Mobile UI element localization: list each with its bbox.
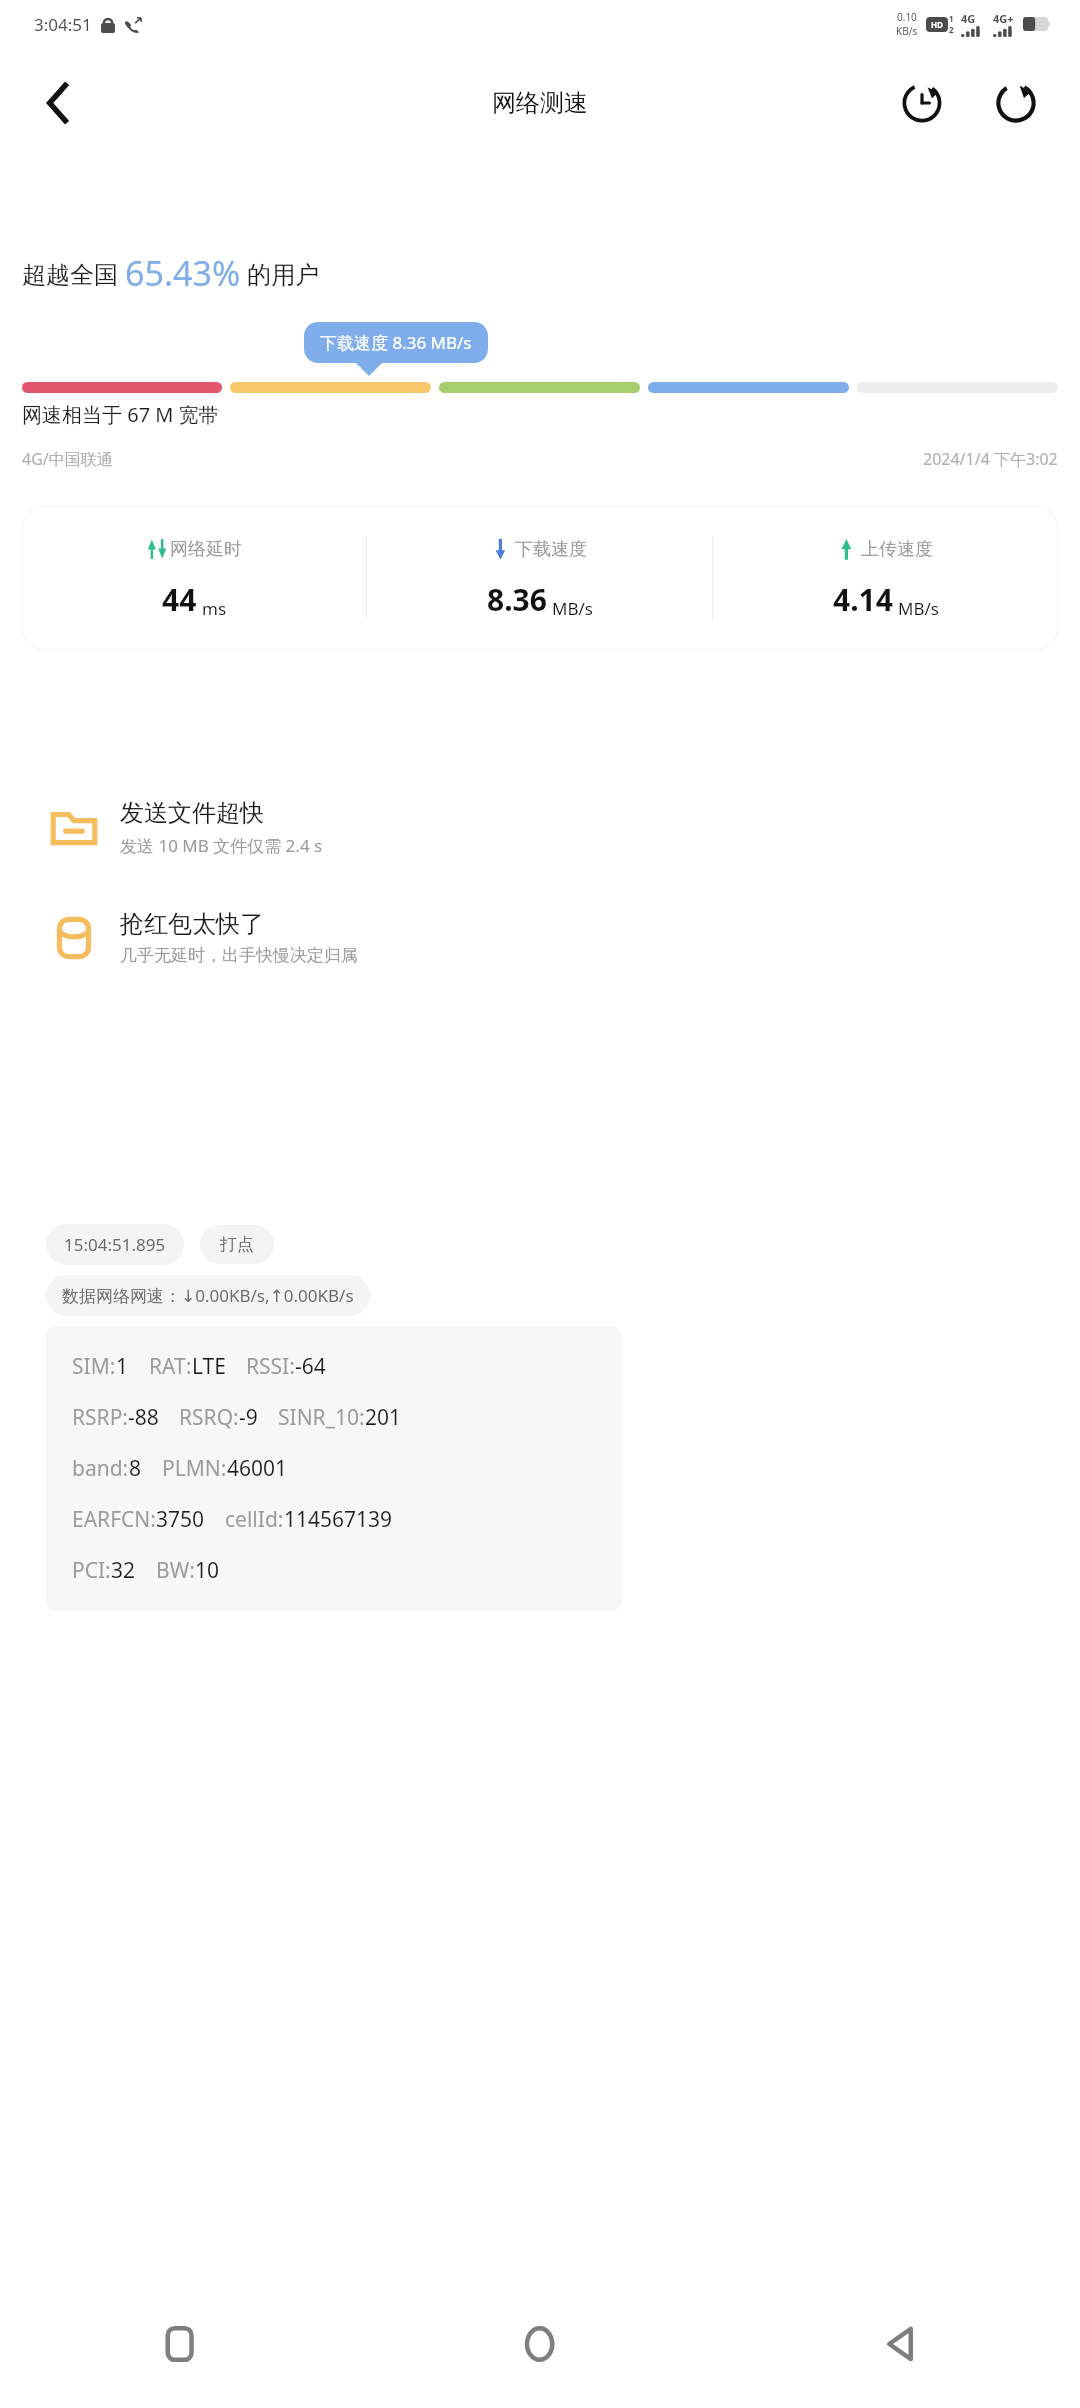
staticText: 抢红包太快了 (120, 909, 264, 939)
staticText: 几乎无延时，出手快慢决定归属 (120, 945, 358, 966)
staticText: 网络测速 (492, 88, 588, 118)
staticText: 下载速度 8.36 MB/s (320, 331, 472, 354)
staticText: 网络延时 (170, 538, 242, 561)
button[interactable]: History (886, 67, 958, 139)
staticText: 发送 10 MB 文件仅需 2.4 s (120, 834, 323, 857)
staticText: 3750 (156, 1505, 205, 1534)
button[interactable]: Home (360, 2280, 720, 2408)
staticText: -9 (239, 1403, 258, 1432)
staticText: band: (72, 1454, 129, 1483)
staticText: 下载速度 (515, 538, 587, 561)
staticText: 4G/中国联通 (22, 448, 113, 470)
staticText: 1 (116, 1352, 129, 1381)
staticText: SINR_10: (278, 1403, 365, 1432)
button[interactable]: Back (30, 75, 86, 131)
staticText: MB/s (552, 597, 593, 620)
staticText: 4G+ (993, 11, 1014, 26)
staticText: KB/s (896, 24, 918, 38)
button[interactable]: 发送文件超快 (0, 798, 1080, 857)
staticText: SIM: (72, 1352, 116, 1381)
staticText: 8.36 (487, 579, 547, 620)
staticText: RSRQ: (179, 1403, 239, 1432)
staticText: 10 (195, 1556, 220, 1585)
staticText: 114567139 (284, 1505, 393, 1534)
staticText: -64 (295, 1352, 326, 1381)
staticText: 2 (949, 24, 954, 35)
staticText: 数据网络网速：↓0.00KB/s,↑0.00KB/s (62, 1284, 354, 1307)
staticText: 65.43% (125, 250, 241, 296)
staticText: 1 (949, 13, 954, 24)
staticText: PCI: (72, 1556, 111, 1585)
button[interactable]: 打点 (200, 1225, 274, 1264)
staticText: 网速相当于 67 M 宽带 (22, 401, 219, 428)
staticText: RSSI: (246, 1352, 295, 1381)
button[interactable]: 抢红包太快了 (0, 909, 1080, 966)
button[interactable]: Back (720, 2280, 1080, 2408)
staticText: 超越全国 (22, 257, 125, 290)
staticText: LTE (192, 1352, 226, 1381)
staticText: 打点 (220, 1234, 254, 1255)
staticText: ms (202, 597, 227, 620)
staticText: 4.14 (833, 579, 893, 620)
staticText: PLMN: (162, 1454, 227, 1483)
staticText: RSRP: (72, 1403, 128, 1432)
staticText: -88 (128, 1403, 159, 1432)
staticText: 发送文件超快 (120, 798, 264, 828)
staticText: 3:04:51 (34, 13, 92, 36)
staticText: RAT: (149, 1352, 192, 1381)
button[interactable]: 网络延时 (22, 506, 1058, 650)
staticText: 上传速度 (861, 538, 933, 561)
staticText: 4G (961, 11, 976, 26)
staticText: 0.10 (897, 10, 917, 24)
staticText: 46001 (227, 1454, 288, 1483)
staticText: 15:04:51.895 (64, 1233, 166, 1256)
staticText: EARFCN: (72, 1505, 156, 1534)
staticText: BW: (156, 1556, 195, 1585)
staticText: 8 (129, 1454, 142, 1483)
staticText: HD (931, 19, 943, 30)
button[interactable]: Recents (0, 2280, 360, 2408)
staticText: 201 (365, 1403, 402, 1432)
staticText: 2024/1/4 下午3:02 (923, 448, 1058, 470)
staticText: cellId: (225, 1505, 284, 1534)
button[interactable]: 15:04:51.895 (46, 1224, 184, 1265)
staticText: MB/s (898, 597, 939, 620)
staticText: 44 (162, 579, 197, 620)
staticText: 的用户 (241, 257, 320, 290)
staticText: 32 (111, 1556, 136, 1585)
button[interactable]: Refresh (980, 67, 1052, 139)
